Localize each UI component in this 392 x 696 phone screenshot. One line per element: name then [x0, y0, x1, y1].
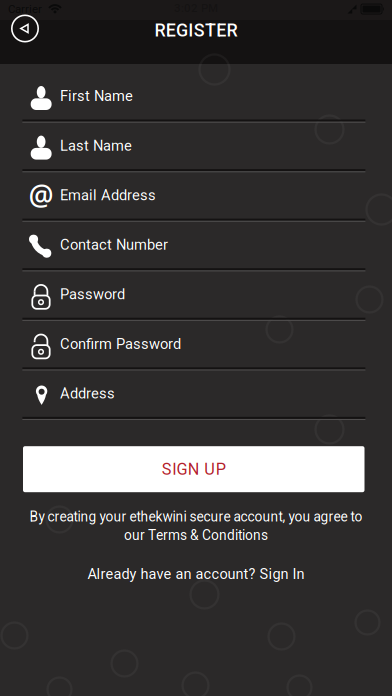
button[interactable]: @ — [22, 171, 370, 220]
button[interactable]: First Name — [22, 72, 370, 121]
staticText: Last Name — [60, 137, 132, 154]
button[interactable]: Confirm Password — [22, 319, 370, 368]
staticText: SIGN UP — [162, 460, 226, 479]
button[interactable]: Already have an account? Sign In — [87, 565, 304, 582]
button[interactable]: Password — [22, 270, 370, 319]
staticText: Password — [60, 286, 125, 303]
staticText: Confirm Password — [60, 335, 181, 352]
staticText: Email Address — [60, 187, 156, 204]
staticText: By creating your ethekwini secure accoun… — [29, 509, 362, 525]
button[interactable]: SIGN UP — [23, 446, 364, 492]
button[interactable]: Address — [22, 369, 370, 418]
button[interactable]: Last Name — [22, 121, 370, 170]
staticText: Contact Number — [60, 236, 168, 253]
staticText: our Terms & Conditions — [124, 527, 268, 543]
staticText: Already have an account? Sign In — [87, 565, 304, 582]
staticText: Address — [60, 385, 115, 402]
button[interactable]: Back — [11, 14, 39, 42]
staticText: REGISTER — [154, 20, 238, 41]
staticText: First Name — [60, 87, 133, 105]
staticText: @ — [28, 176, 53, 214]
staticText: Carrier — [8, 2, 42, 16]
button[interactable]: Contact Number — [22, 220, 370, 269]
